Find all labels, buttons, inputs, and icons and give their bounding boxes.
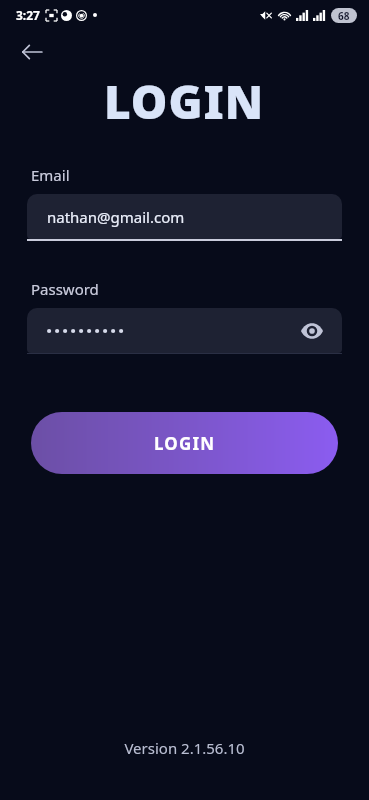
button[interactable]: Back [16, 36, 48, 68]
staticText: nathan@gmail.com [47, 207, 185, 227]
button[interactable]: LOGIN [31, 412, 338, 474]
button[interactable]: Show password [27, 308, 342, 353]
button[interactable]: nathan@gmail.com [27, 194, 342, 239]
staticText: 68 [338, 9, 350, 23]
staticText: LOGIN [154, 432, 216, 455]
staticText: Password [31, 279, 99, 299]
staticText: LOGIN [104, 70, 265, 126]
staticText: Email [31, 165, 70, 185]
button[interactable]: Show password [296, 315, 328, 347]
staticText: Version 2.1.56.10 [124, 738, 245, 758]
staticText: 3:27 [16, 7, 40, 23]
